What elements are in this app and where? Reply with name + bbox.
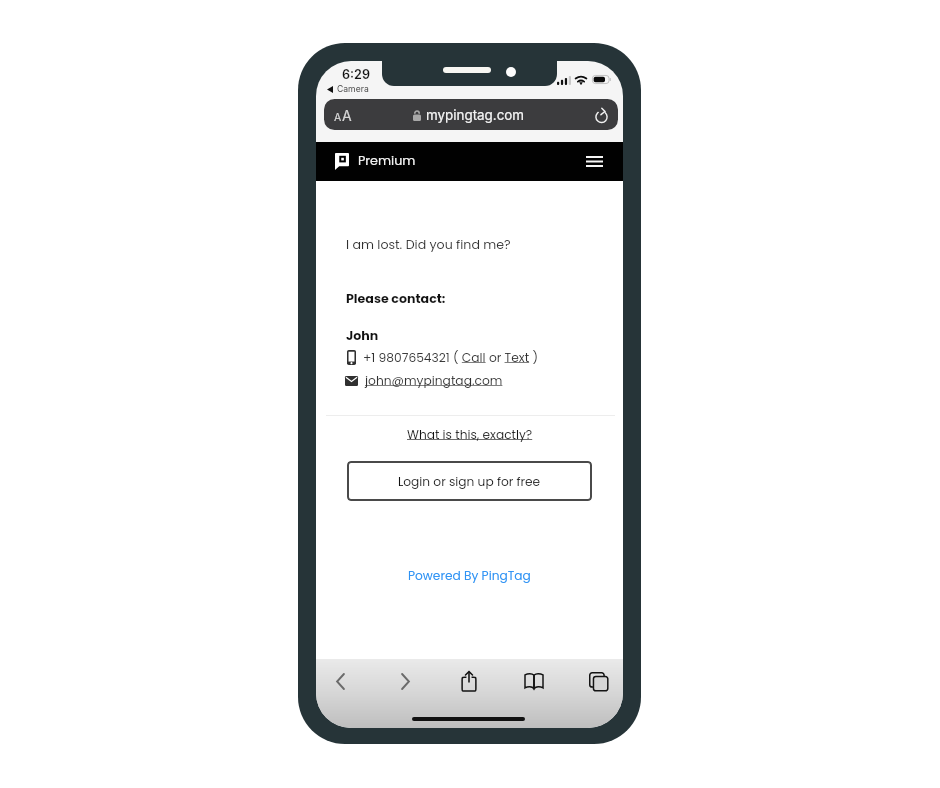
button[interactable]: Powered By PingTag <box>408 567 531 584</box>
button[interactable]: Tabs <box>581 664 615 698</box>
button[interactable]: Reload page <box>595 107 608 123</box>
staticText: john@mypingtag.com <box>365 372 503 389</box>
staticText: mypingtag.com <box>426 107 525 123</box>
staticText: I am lost. Did you find me? <box>346 236 511 254</box>
staticText: Camera <box>337 84 369 94</box>
staticText: +1 9807654321 ( Call or Text ) <box>363 349 538 366</box>
staticText: Please contact: <box>346 290 446 308</box>
button[interactable]: Share <box>452 664 486 698</box>
staticText: A <box>342 107 352 124</box>
staticText: John <box>346 327 379 345</box>
button[interactable]: john@mypingtag.com <box>345 372 503 389</box>
button[interactable]: Premium <box>358 152 416 170</box>
button[interactable]: Open menu <box>586 153 603 170</box>
button[interactable]: Login or sign up for free <box>347 461 592 501</box>
button[interactable]: A <box>324 99 618 130</box>
staticText: A <box>334 111 342 124</box>
button[interactable]: Bookmarks <box>517 664 551 698</box>
button[interactable]: Back <box>323 664 357 698</box>
staticText: Login or sign up for free <box>398 473 541 490</box>
button[interactable]: Forward <box>388 664 422 698</box>
staticText: 6:29 <box>342 67 370 82</box>
button[interactable]: What is this, exactly? <box>407 426 533 443</box>
